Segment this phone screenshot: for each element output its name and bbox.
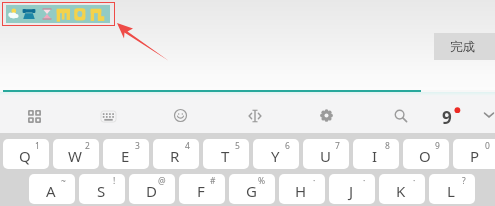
button[interactable]: R [153,139,199,169]
button[interactable]: A [29,174,75,204]
button[interactable]: Hourglass sticker [40,5,54,23]
staticText: O [419,146,431,166]
staticText: 9 [435,140,440,152]
staticText: · [313,175,316,187]
button[interactable]: Q [3,139,49,169]
button[interactable]: U [303,139,349,169]
button[interactable]: Keyboard layouts [28,110,41,123]
staticText: 2 [85,140,90,152]
button[interactable]: F [179,174,225,204]
staticText: % [258,175,266,187]
staticText: 5 [235,140,240,152]
staticText: T [221,146,230,166]
button[interactable]: L [429,174,475,204]
button[interactable]: Sticker 6 [89,5,106,23]
staticText: ! [113,175,116,187]
staticText: 8 [385,140,390,152]
button[interactable]: D [129,174,175,204]
staticText: I [372,146,378,166]
staticText: 完成 [450,39,475,55]
staticText: S [97,181,106,201]
button[interactable]: E [103,139,149,169]
staticText: 3 [135,140,140,152]
staticText: ~ [61,175,66,187]
button[interactable]: Y [253,139,299,169]
button[interactable]: S [79,174,125,204]
staticText: · [413,175,416,187]
button[interactable]: Weather sticker [6,5,21,23]
staticText: 0 [485,140,490,152]
staticText: H [295,181,307,201]
button[interactable]: 完成 [434,33,495,60]
staticText: E [121,146,130,166]
staticText: G [246,181,257,201]
staticText: 4 [185,140,190,152]
button[interactable]: T [203,139,249,169]
button[interactable]: Settings [320,109,333,122]
staticText: Y [271,146,280,166]
staticText: L [447,181,455,201]
button[interactable]: K [379,174,425,204]
staticText: R [170,146,180,166]
staticText: @ [158,175,166,187]
staticText: Q [19,146,31,166]
staticText: 7 [335,140,340,152]
staticText: 6 [285,140,290,152]
button[interactable]: Search [394,109,408,123]
button[interactable]: J [329,174,375,204]
button[interactable]: Keyboard [101,111,116,122]
staticText: P [470,146,480,166]
button[interactable]: G [229,174,275,204]
staticText: · [363,175,366,187]
button[interactable]: I [353,139,399,169]
staticText: A [46,181,56,201]
button[interactable]: Collapse keyboard [484,112,494,118]
staticText: ? [462,175,466,187]
button[interactable]: H [279,174,325,204]
button[interactable]: Clipboard, new items [440,106,462,124]
button[interactable]: P [453,139,495,169]
button[interactable]: W [53,139,99,169]
staticText: J [349,181,354,201]
staticText: K [396,181,406,201]
button[interactable]: Emoji [174,109,187,122]
staticText: 9 [442,106,452,124]
staticText: D [146,181,157,201]
staticText: W [68,146,82,166]
staticText: F [197,181,205,201]
staticText: # [210,175,216,187]
button[interactable]: Telephone sticker [21,5,37,23]
button[interactable]: Move cursor [248,109,262,123]
button[interactable]: O [403,139,449,169]
button[interactable]: Sticker 4 [55,5,72,23]
staticText: 1 [35,140,40,152]
button[interactable]: Sticker 5 [72,5,88,23]
staticText: U [320,146,331,166]
